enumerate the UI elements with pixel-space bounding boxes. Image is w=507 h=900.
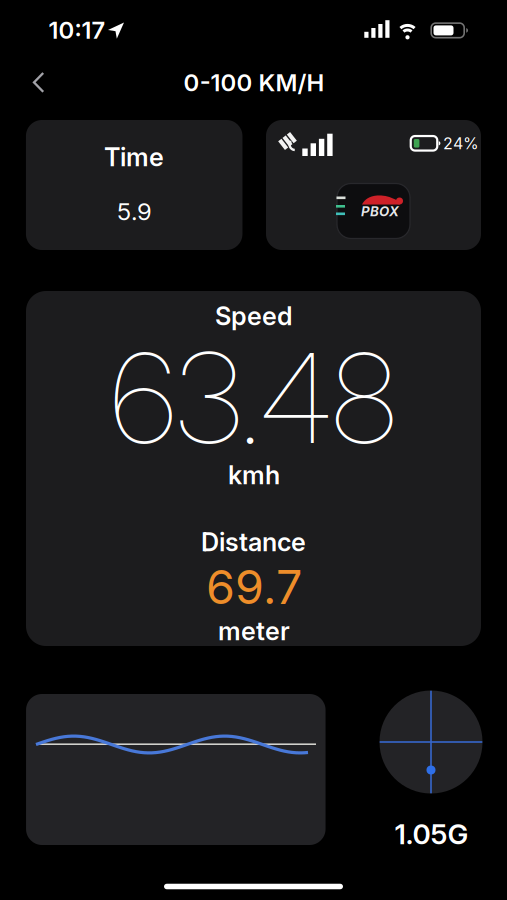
staticText: 10:17 (48, 15, 105, 44)
staticText: 1.05G (394, 817, 468, 851)
staticText: meter (218, 616, 290, 646)
button[interactable]: Back (20, 68, 64, 96)
staticText: Time (104, 142, 164, 172)
staticText: 24% (443, 134, 479, 153)
staticText: 0-100 KM/H (183, 68, 324, 97)
staticText: 63.48 (111, 323, 396, 473)
staticText: kmh (228, 460, 280, 490)
staticText: 5.9 (117, 197, 152, 226)
staticText: Speed (215, 301, 293, 331)
staticText: Distance (201, 527, 306, 557)
staticText: PBOX (361, 203, 399, 219)
staticText: 69.7 (206, 559, 302, 615)
